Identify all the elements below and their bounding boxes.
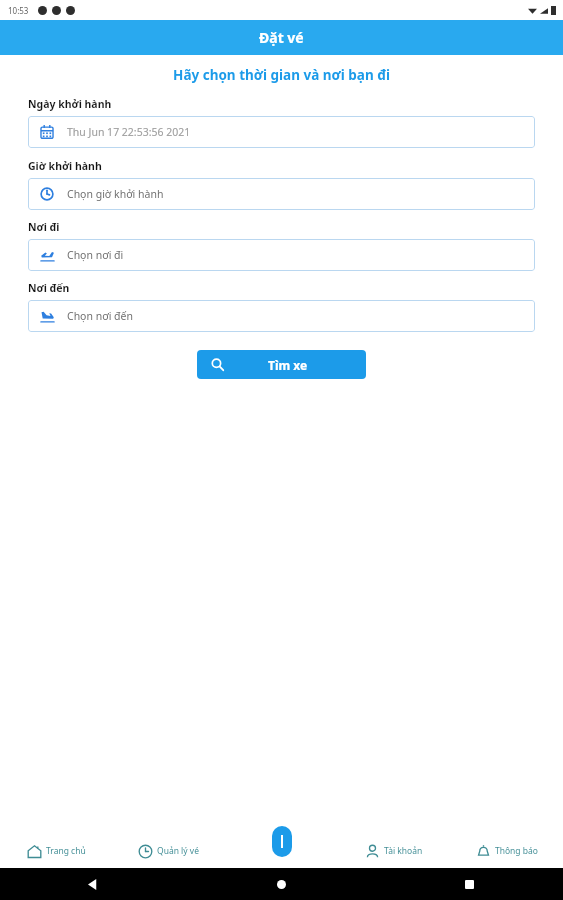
staticText: Tìm xe (268, 357, 308, 373)
staticText: Ngày khởi hành (28, 97, 112, 111)
staticText: Thông báo (495, 845, 538, 857)
button[interactable]: Đặt vé (272, 826, 292, 857)
button[interactable]: Chọn ngày khởi hành (28, 116, 535, 148)
staticText: Trang chủ (46, 845, 86, 857)
button[interactable]: Chọn giờ khởi hành (28, 178, 535, 210)
button[interactable]: Tài khoản (337, 833, 450, 868)
staticText: Đặt vé (259, 28, 304, 47)
button[interactable]: Trang chủ (0, 833, 112, 868)
staticText: 10:53 (8, 5, 29, 16)
staticText: Thu Jun 17 22:53:56 2021 (67, 125, 191, 139)
staticText: Hãy chọn thời gian và nơi bạn đi (0, 66, 563, 84)
staticText: Quản lý vé (157, 845, 199, 857)
staticText: Giờ khởi hành (28, 159, 102, 173)
staticText: Nơi đi (28, 220, 60, 234)
button[interactable]: Chọn nơi đi (28, 239, 535, 271)
button[interactable]: Thông báo (450, 833, 563, 868)
staticText: Chọn nơi đến (67, 309, 133, 323)
staticText: Chọn nơi đi (67, 248, 124, 262)
staticText: Tài khoản (384, 845, 423, 857)
staticText: Chọn giờ khởi hành (67, 187, 164, 201)
button[interactable]: Tìm xe (197, 350, 366, 379)
staticText: Nơi đến (28, 281, 70, 295)
button[interactable]: Quản lý vé (112, 833, 224, 868)
button[interactable]: Chọn nơi đến (28, 300, 535, 332)
